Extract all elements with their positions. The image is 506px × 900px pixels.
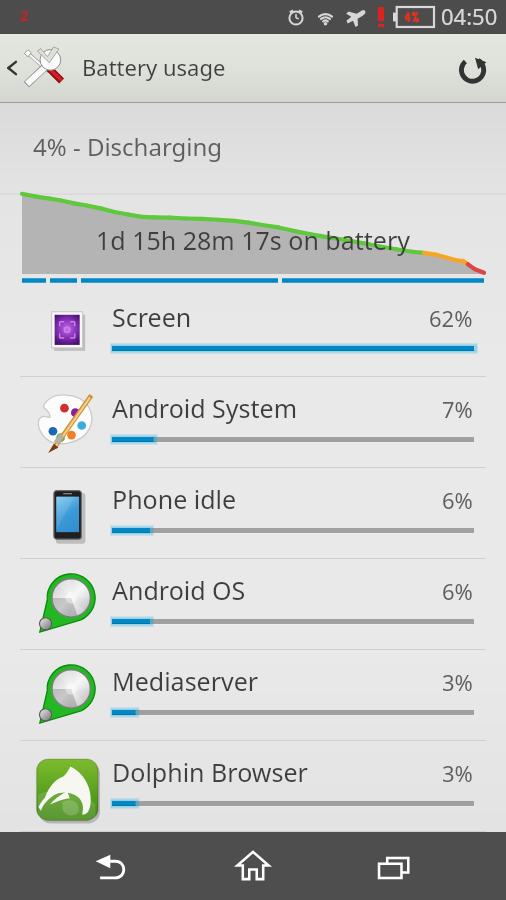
staticText: 6% (442, 485, 473, 515)
button[interactable]: Dolphin Browser (0, 745, 506, 836)
button[interactable]: Back (71, 832, 153, 900)
staticText: 2 (20, 5, 29, 25)
button[interactable]: Android OS (0, 563, 506, 654)
staticText: 62% (429, 303, 473, 333)
staticText: 1d 15h 28m 17s on battery (96, 223, 410, 257)
staticText: 3% (442, 758, 473, 788)
button[interactable]: Screen (0, 290, 506, 381)
staticText: Phone idle (112, 482, 237, 516)
staticText: 4% - Discharging (33, 130, 223, 163)
staticText: Screen (112, 300, 192, 334)
staticText: Android OS (112, 573, 246, 607)
button[interactable]: Recent apps (353, 832, 435, 900)
button[interactable]: Back (0, 41, 70, 95)
button[interactable]: Home (212, 832, 294, 900)
button[interactable]: Mediaserver (0, 654, 506, 745)
staticText: Dolphin Browser (112, 755, 308, 789)
staticText: Mediaserver (112, 664, 259, 698)
staticText: Battery usage (82, 52, 226, 82)
staticText: Android System (112, 391, 298, 425)
staticText: 6% (442, 576, 473, 606)
staticText: 7% (442, 394, 473, 424)
button[interactable]: Refresh (440, 35, 506, 101)
staticText: 04:50 (441, 1, 498, 31)
staticText: 3% (442, 667, 473, 697)
button[interactable]: Phone idle (0, 472, 506, 563)
button[interactable]: Android System (0, 381, 506, 472)
